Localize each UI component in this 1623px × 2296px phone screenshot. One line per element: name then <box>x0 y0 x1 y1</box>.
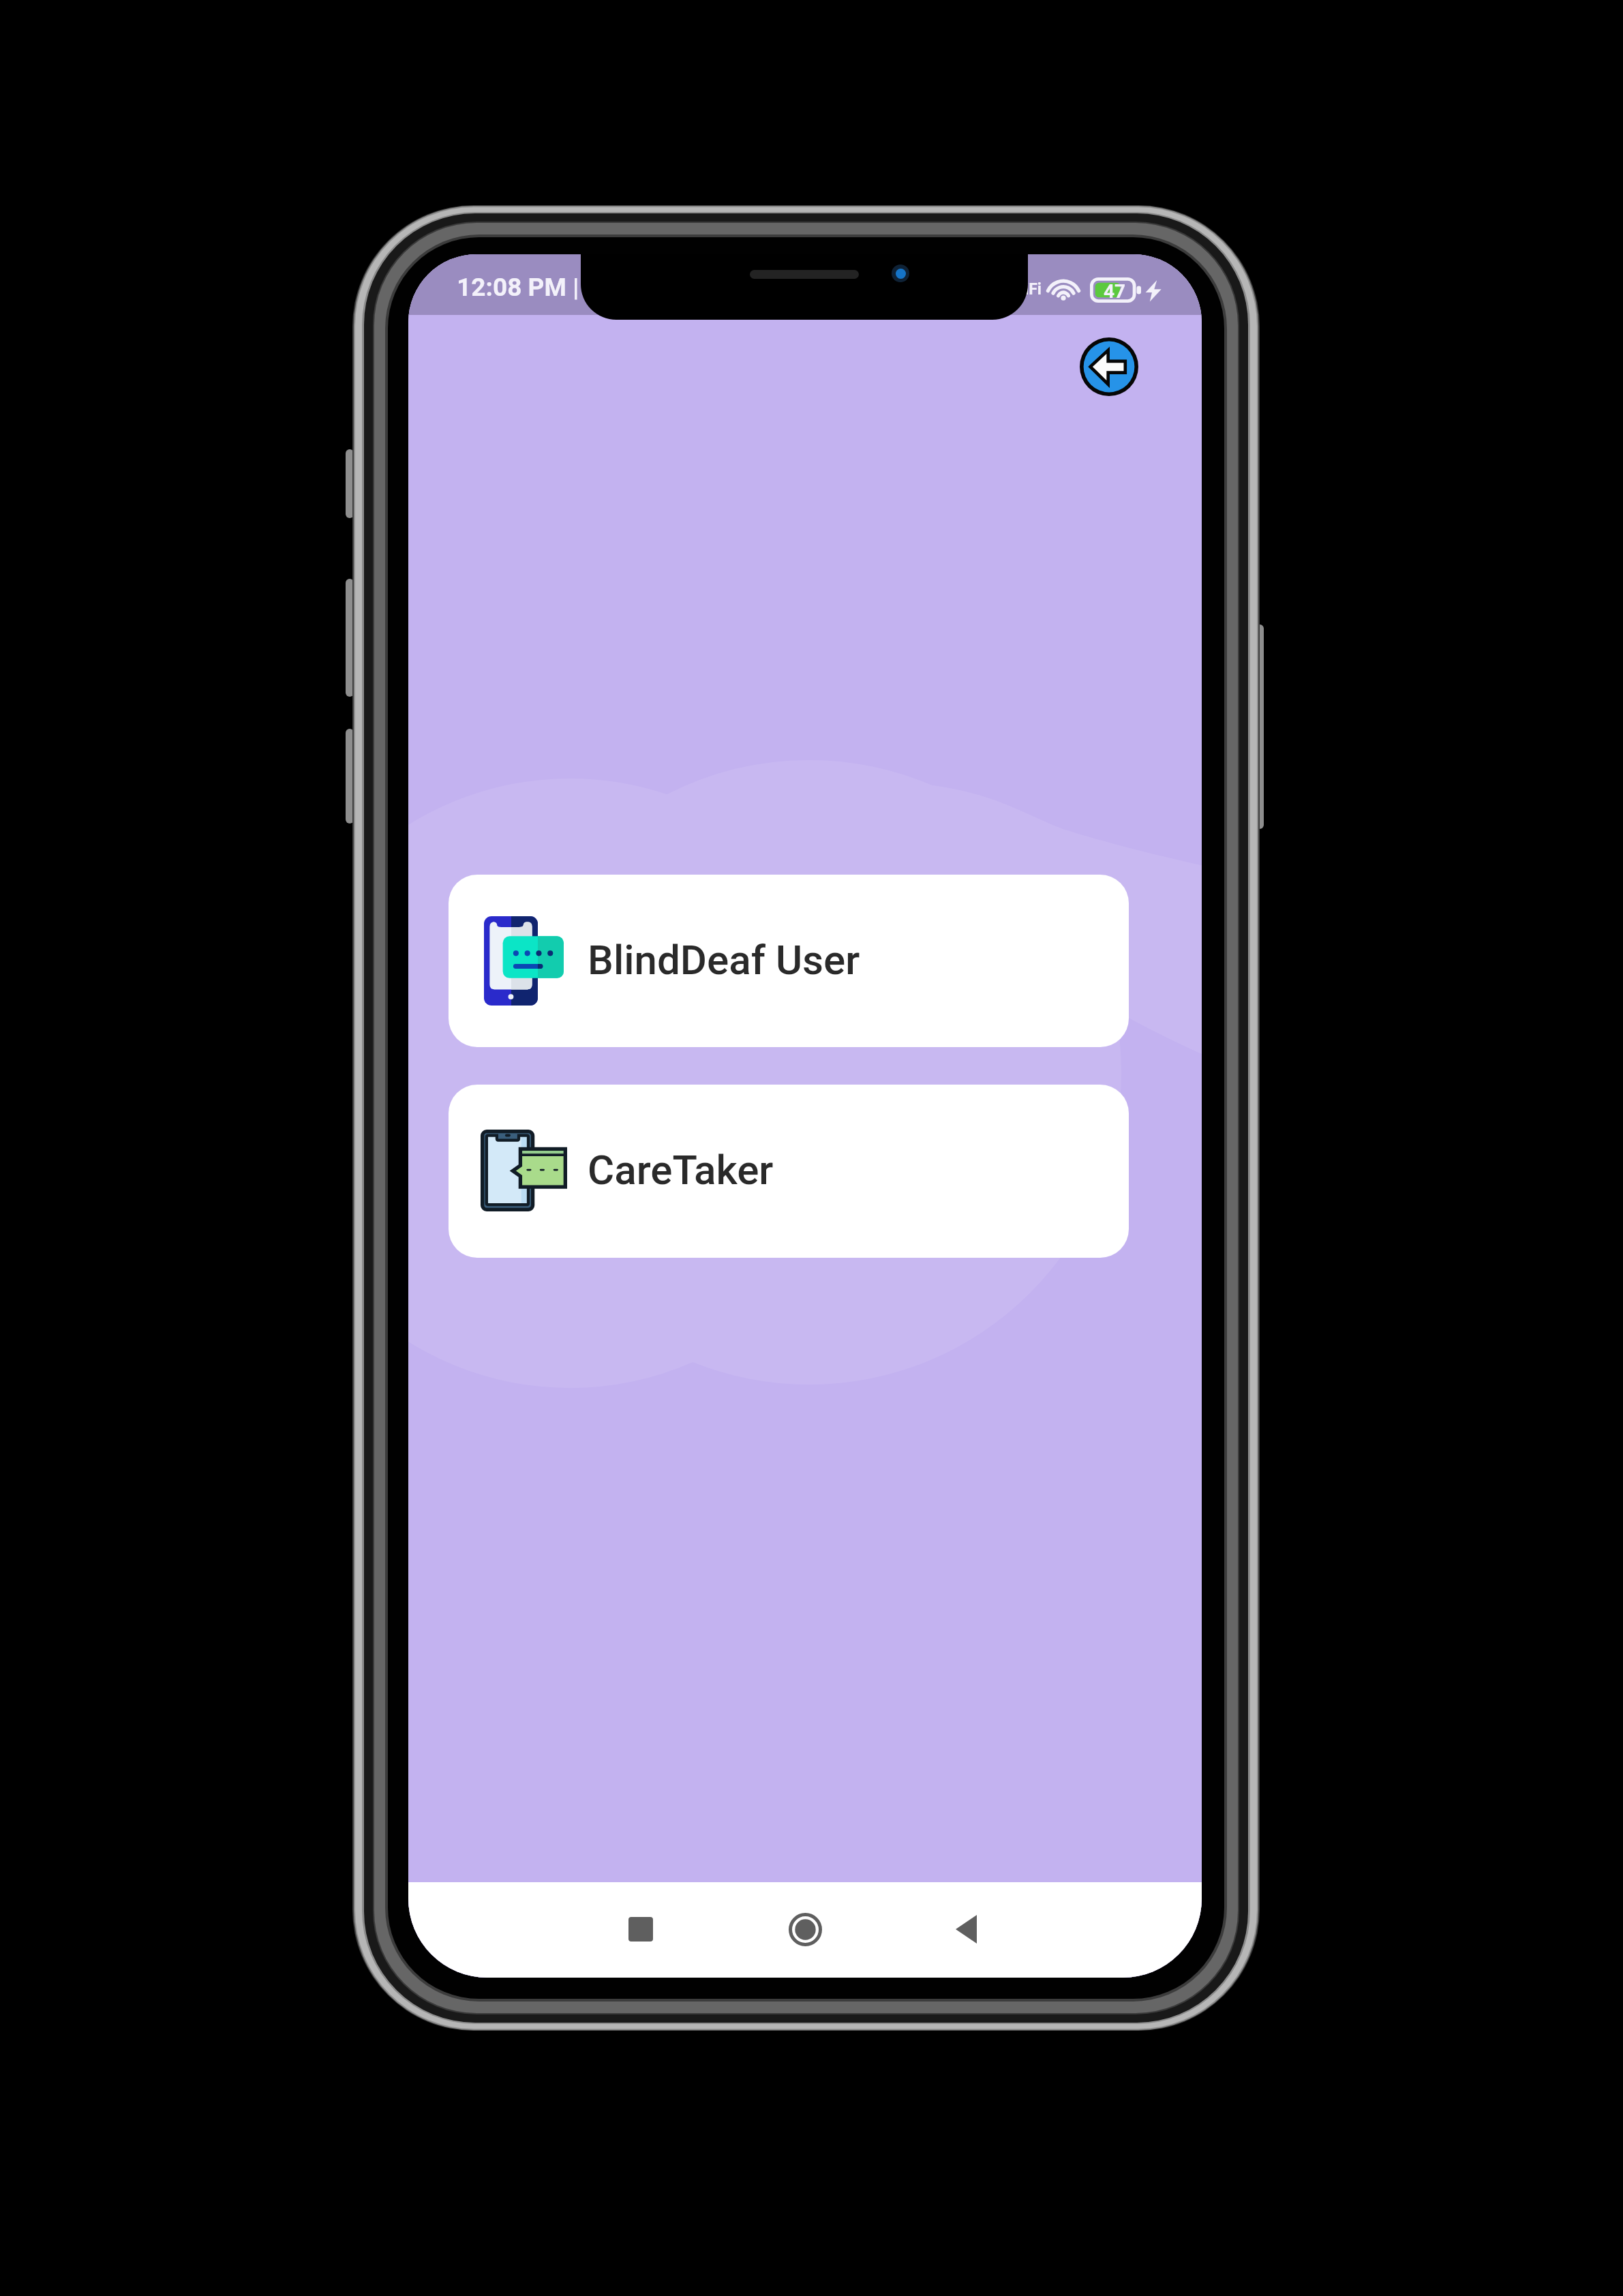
staticText: 12:08 PM | <box>457 273 579 302</box>
button[interactable]: Back <box>1072 329 1147 404</box>
staticText: BlindDeaf User <box>588 936 860 984</box>
button[interactable]: Back <box>922 1885 1010 1974</box>
staticText: P WiFi <box>1011 264 1042 299</box>
button[interactable]: Recent apps <box>596 1885 685 1974</box>
button[interactable]: BlindDeaf User <box>449 875 1129 1047</box>
button[interactable]: CareTaker <box>449 1085 1129 1258</box>
staticText: 47 <box>1104 280 1126 303</box>
button[interactable]: Home <box>761 1885 849 1974</box>
staticText: CareTaker <box>588 1146 774 1194</box>
